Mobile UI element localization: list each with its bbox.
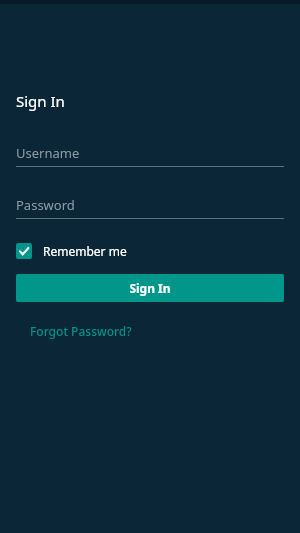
button[interactable]: Password bbox=[16, 196, 284, 219]
button[interactable]: Forgot Password? bbox=[30, 323, 132, 339]
staticText: Password bbox=[16, 196, 75, 214]
staticText: Remember me bbox=[43, 243, 127, 259]
staticText: Sign In bbox=[129, 280, 171, 296]
staticText: Username bbox=[16, 144, 80, 162]
button[interactable]: Remember me checkbox bbox=[16, 243, 127, 259]
staticText: Forgot Password? bbox=[30, 323, 132, 339]
staticText: Sign In bbox=[16, 91, 65, 111]
other: Remember me checkbox bbox=[16, 243, 32, 259]
button[interactable]: Username bbox=[16, 144, 284, 167]
button[interactable]: Sign In bbox=[16, 274, 284, 302]
